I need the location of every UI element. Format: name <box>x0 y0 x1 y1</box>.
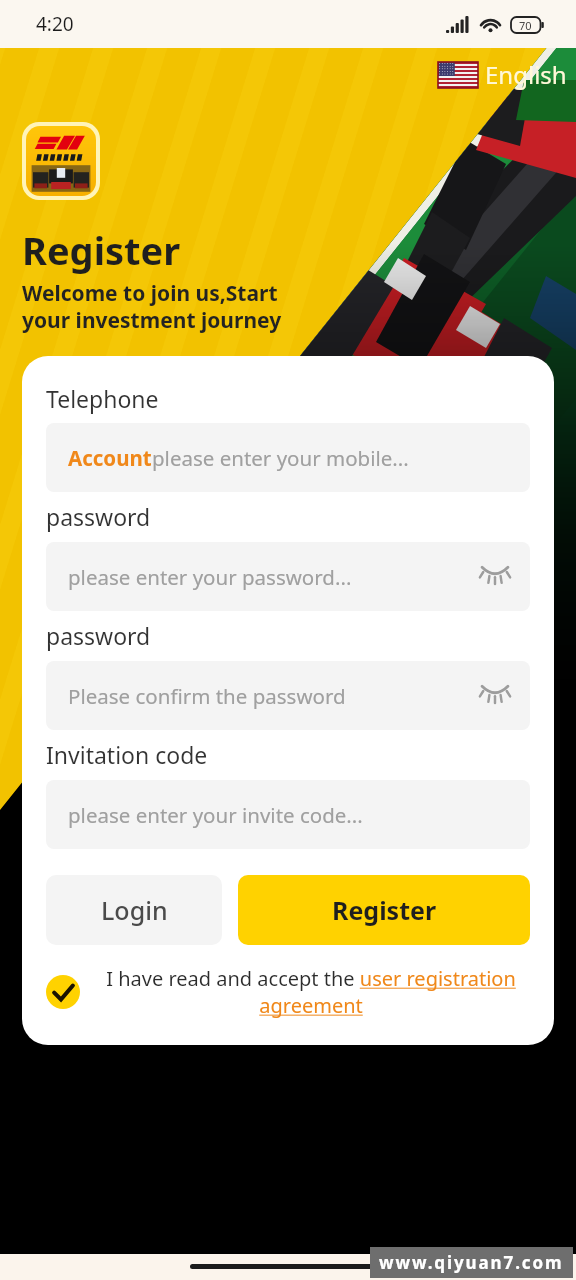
staticText: Account <box>68 444 152 472</box>
staticText: please enter your mobile... <box>152 444 409 472</box>
staticText: English <box>485 58 567 91</box>
staticText: password <box>46 501 151 532</box>
staticText: Invitation code <box>46 739 208 770</box>
staticText: Telephone <box>46 383 159 414</box>
staticText: please enter your password... <box>68 563 352 591</box>
button[interactable]: please enter your password... <box>46 542 530 611</box>
button[interactable]: Login <box>46 875 222 945</box>
button[interactable]: I have read and accept the user registra… <box>46 965 530 1019</box>
button[interactable]: please enter your invite code... <box>46 780 530 849</box>
staticText: 4:20 <box>36 11 74 37</box>
staticText: Welcome to join us,Start your investment… <box>22 279 282 334</box>
button[interactable]: Account <box>46 423 530 492</box>
staticText: password <box>46 620 151 651</box>
staticText: please enter your invite code... <box>68 801 363 829</box>
staticText: I have read and accept the user registra… <box>92 965 530 1019</box>
staticText: 70 <box>519 18 532 33</box>
button[interactable]: English <box>438 58 567 91</box>
button[interactable]: Register <box>238 875 530 945</box>
button[interactable]: Show password <box>478 674 512 708</box>
staticText: Login <box>101 893 168 927</box>
staticText: Register <box>332 893 437 927</box>
button[interactable]: Show password <box>478 555 512 589</box>
button[interactable]: F1 Passion logo <box>26 126 96 196</box>
button[interactable]: Please confirm the password <box>46 661 530 730</box>
staticText: Register <box>22 224 181 276</box>
staticText: Please confirm the password <box>68 682 346 710</box>
staticText: www.qiyuan7.com <box>379 1251 564 1274</box>
